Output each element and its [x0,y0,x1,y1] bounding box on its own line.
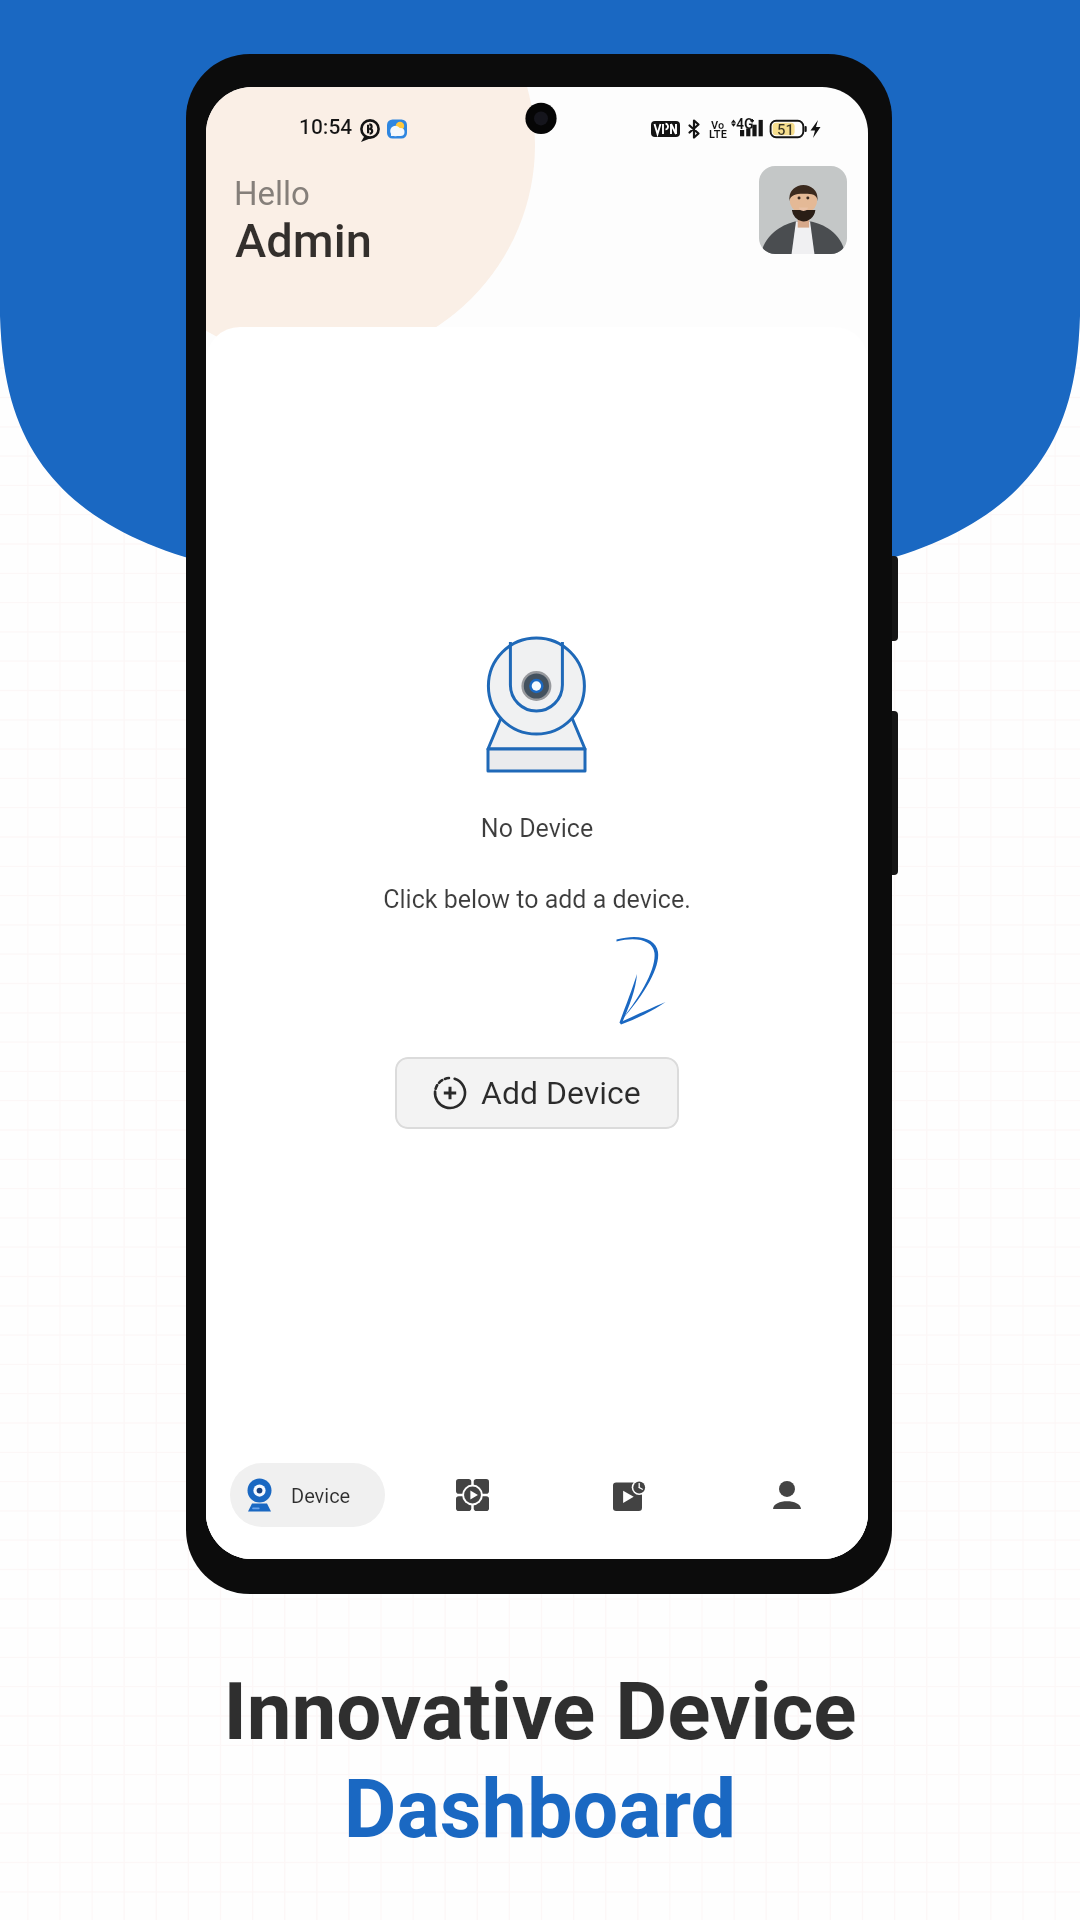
staticText: 4G [736,116,754,132]
staticText: Add Device [481,1074,641,1112]
staticText: Admin [235,213,372,268]
button[interactable]: Multi view [456,1479,489,1511]
staticText: 10:54 [299,115,353,140]
button[interactable]: Add Device [395,1057,679,1129]
staticText: Innovative Device [0,1665,1080,1759]
button[interactable]: Device [230,1463,385,1527]
staticText: 51 [777,121,795,139]
staticText: Device [291,1484,351,1507]
button[interactable]: Account [773,1481,801,1509]
staticText: Hello [234,174,310,213]
button[interactable]: Playback [613,1480,647,1512]
staticText: Click below to add a device. [206,885,868,914]
staticText: LTE [709,128,727,141]
staticText: No Device [206,814,868,843]
staticText: Vo [711,119,725,132]
button[interactable]: Profile [759,166,847,254]
staticText: Dashboard [0,1762,1080,1857]
